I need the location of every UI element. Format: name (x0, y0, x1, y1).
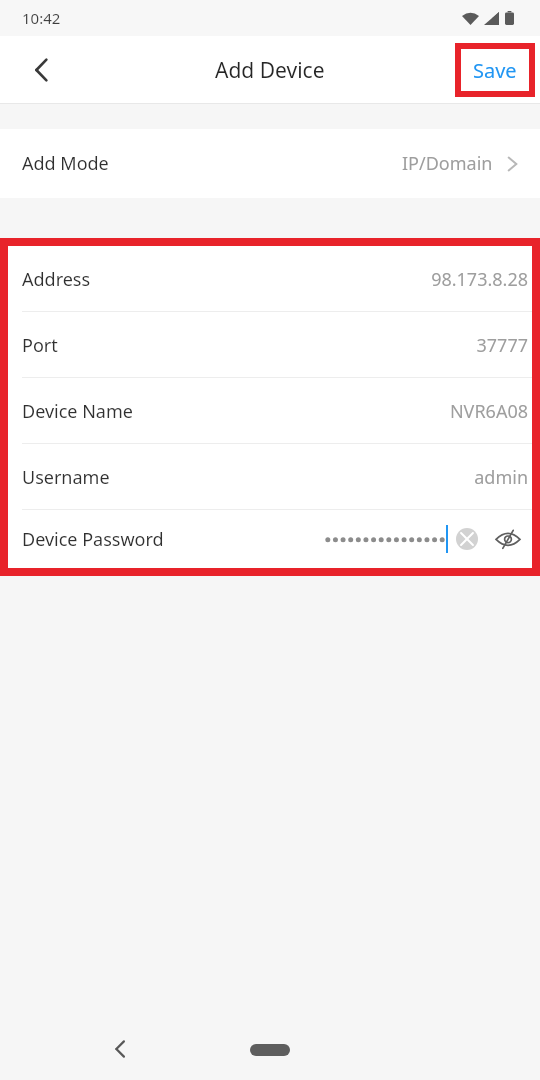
staticText: IP/Domain (402, 151, 493, 176)
button[interactable]: Back (96, 1025, 144, 1073)
staticText: Address (22, 267, 91, 292)
button[interactable]: Device Name (8, 378, 532, 444)
button[interactable]: Username (8, 444, 532, 510)
staticText: Add Mode (22, 151, 109, 176)
staticText: Device Password (22, 527, 164, 552)
staticText: 37777 (476, 333, 528, 358)
staticText: Device Name (22, 399, 133, 424)
button[interactable]: Device Password (8, 510, 532, 568)
button[interactable]: Add Mode (0, 129, 540, 198)
button[interactable]: Home (250, 1044, 290, 1056)
staticText: Save (473, 57, 517, 84)
staticText: Username (22, 465, 110, 490)
staticText: admin (474, 465, 528, 490)
button[interactable]: Save (461, 49, 529, 91)
staticText: 98.173.8.28 (431, 267, 528, 292)
button[interactable]: Clear password (454, 526, 480, 552)
staticText: 10:42 (22, 8, 61, 28)
staticText: Add Device (215, 56, 325, 85)
staticText: Port (22, 333, 58, 358)
button[interactable]: Back (14, 42, 70, 98)
button[interactable]: Port (8, 312, 532, 378)
staticText: NVR6A08 (449, 399, 528, 424)
button[interactable]: Address (8, 246, 532, 312)
button[interactable]: Show password (492, 523, 524, 555)
